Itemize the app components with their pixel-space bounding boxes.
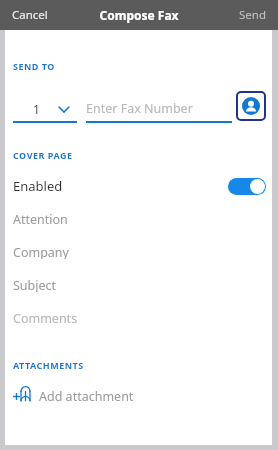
staticText: Compose Fax [99,7,179,23]
staticText: Comments [13,310,78,325]
staticText: Enabled [13,177,63,195]
staticText: Cancel [12,7,48,23]
staticText: Add attachment [39,388,134,405]
button[interactable]: Enabled [5,174,272,198]
button[interactable]: 1 [13,101,77,123]
staticText: Company [13,244,69,259]
button[interactable]: Attention [5,211,272,226]
button[interactable]: Enter Fax Number [86,100,232,123]
staticText: COVER PAGE [13,149,73,161]
button[interactable]: Choose contact [236,91,266,121]
button[interactable]: Company [5,244,272,259]
button[interactable]: Subject [5,277,272,292]
button[interactable]: Send [229,3,278,27]
button[interactable]: Cancel [0,3,58,27]
staticText: Enter Fax Number [86,100,193,117]
button[interactable]: Comments [5,310,272,325]
staticText: ATTACHMENTS [13,359,84,371]
button[interactable]: Add attachment [5,385,272,407]
staticText: Attention [13,211,68,226]
staticText: Subject [13,277,57,292]
staticText: 1 [33,101,40,117]
staticText: Send [239,7,266,23]
staticText: SEND TO [13,60,55,72]
